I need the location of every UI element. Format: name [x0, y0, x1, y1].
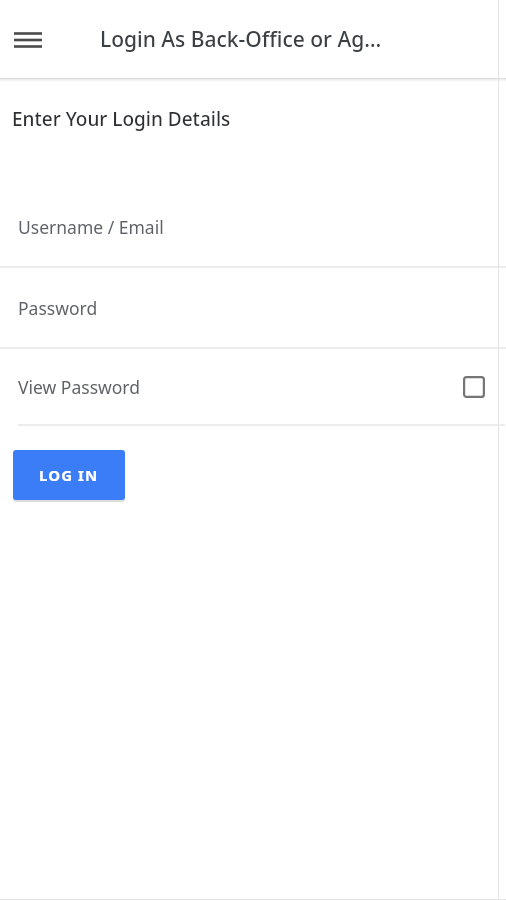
staticText: Username / Email: [18, 215, 164, 239]
staticText: Login As Back-Office or Ag…: [100, 25, 382, 54]
staticText: LOG IN: [39, 465, 99, 485]
staticText: Enter Your Login Details: [12, 106, 231, 132]
staticText: View Password: [18, 375, 140, 399]
button[interactable]: View Password: [0, 349, 506, 424]
button[interactable]: Open navigation menu: [10, 22, 46, 58]
other: View Password checkbox: [463, 376, 485, 398]
button[interactable]: Password: [0, 268, 506, 347]
staticText: Password: [18, 296, 98, 320]
button[interactable]: Username / Email: [0, 187, 506, 266]
button[interactable]: LOG IN: [13, 450, 125, 500]
